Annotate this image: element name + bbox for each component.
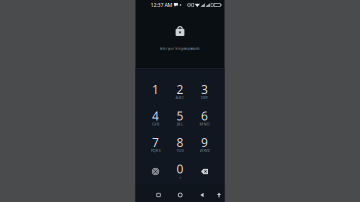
button[interactable]: 9 <box>192 132 217 158</box>
staticText: 5 <box>176 108 183 124</box>
button[interactable]: 2 <box>168 79 192 105</box>
button[interactable]: Home <box>174 188 187 202</box>
button[interactable]: 8 <box>168 132 192 158</box>
button[interactable]: 7 <box>143 132 168 158</box>
staticText: 2 <box>176 81 183 97</box>
button[interactable]: Hide keyboard <box>214 188 223 202</box>
staticText: 0 <box>176 161 183 177</box>
button[interactable]: 4 <box>143 105 168 132</box>
button[interactable]: Unlock with fingerprint <box>143 158 168 185</box>
staticText: 4 <box>152 108 159 124</box>
staticText: 9 <box>201 134 208 150</box>
button[interactable]: 6 <box>192 105 217 132</box>
staticText: PQRS <box>150 148 160 153</box>
button[interactable]: Delete <box>192 158 217 185</box>
staticText: 1 <box>152 81 159 97</box>
staticText: 8 <box>176 134 183 150</box>
staticText: ABC <box>175 95 184 100</box>
staticText: TUV <box>176 148 183 153</box>
button[interactable]: 3 <box>192 79 217 105</box>
staticText: DEF <box>201 95 208 100</box>
button[interactable]: 0 <box>168 158 192 185</box>
staticText: 6 <box>201 108 208 124</box>
button[interactable]: Recents <box>152 188 165 202</box>
staticText: + <box>179 174 181 179</box>
button[interactable]: Back <box>195 188 208 202</box>
button[interactable]: 1 <box>143 79 168 105</box>
staticText: 3 <box>201 81 208 97</box>
staticText: Enter your Telegram passcode <box>160 47 200 50</box>
staticText: WXYZ <box>199 148 209 153</box>
staticText: GHI <box>152 121 159 126</box>
staticText: 7 <box>152 134 159 150</box>
staticText: JKL <box>177 121 183 126</box>
staticText: 12:37 AM <box>150 1 172 9</box>
staticText: MNO <box>199 121 209 126</box>
button[interactable]: 5 <box>168 105 192 132</box>
